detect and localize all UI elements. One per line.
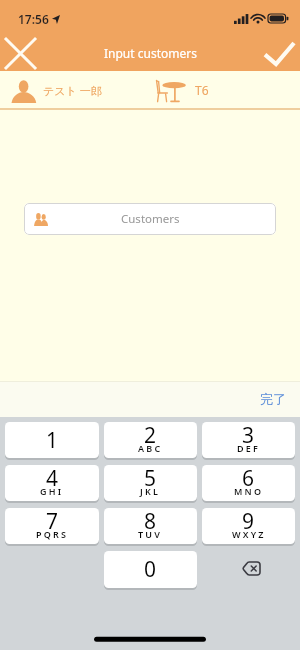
staticText: 2 <box>144 421 157 450</box>
staticText: MNO <box>234 485 264 497</box>
button[interactable]: 3 <box>202 422 295 458</box>
staticText: 6 <box>242 464 255 493</box>
staticText: 17:56 <box>18 11 49 27</box>
button[interactable]: 7 <box>5 508 99 544</box>
staticText: PQRS <box>36 528 69 540</box>
staticText: WXYZ <box>232 528 266 540</box>
button[interactable]: 6 <box>202 465 295 501</box>
button[interactable]: 2 <box>104 422 197 458</box>
staticText: TUV <box>138 528 163 540</box>
staticText: 7 <box>46 507 59 536</box>
button[interactable]: 完了 <box>246 382 300 416</box>
button[interactable]: 0 <box>104 551 197 588</box>
button[interactable]: 8 <box>104 508 197 544</box>
button[interactable]: テスト 一郎 <box>0 71 150 110</box>
staticText: 0 <box>144 555 157 584</box>
staticText: JKL <box>140 485 161 497</box>
staticText: 1 <box>46 426 59 455</box>
staticText: 8 <box>144 507 157 536</box>
staticText: 5 <box>144 464 157 493</box>
staticText: Input customers <box>104 45 197 61</box>
staticText: 完了 <box>260 391 286 407</box>
button[interactable]: Customers <box>24 203 276 235</box>
staticText: 3 <box>242 421 255 450</box>
button[interactable]: 5 <box>104 465 197 501</box>
button[interactable]: 9 <box>202 508 295 544</box>
button[interactable]: 1 <box>5 422 99 458</box>
button[interactable]: Confirm <box>258 35 300 71</box>
staticText: DEF <box>237 442 261 454</box>
staticText: T6 <box>195 82 209 98</box>
staticText: ABC <box>138 442 163 454</box>
button[interactable]: T6 <box>150 71 300 110</box>
staticText: 9 <box>242 507 255 536</box>
button[interactable]: Close <box>0 35 40 71</box>
button[interactable]: Delete <box>202 551 295 588</box>
button[interactable]: 4 <box>5 465 99 501</box>
staticText: 4 <box>46 464 59 493</box>
staticText: GHI <box>40 485 64 497</box>
staticText: Customers <box>121 211 180 227</box>
staticText: テスト 一郎 <box>43 83 102 98</box>
